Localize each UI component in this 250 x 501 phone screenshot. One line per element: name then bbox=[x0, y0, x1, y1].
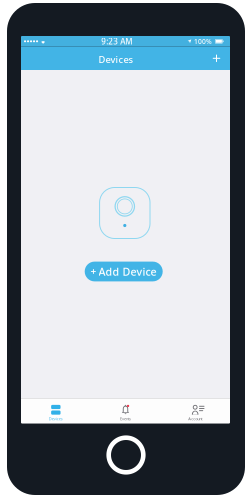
staticText: Add Device bbox=[98, 264, 156, 279]
staticText: Devices bbox=[98, 53, 133, 65]
button[interactable]: Account bbox=[160, 398, 230, 423]
staticText: Events bbox=[120, 416, 131, 421]
button[interactable]: Add Device bbox=[85, 262, 163, 281]
button[interactable]: Add Device bbox=[208, 50, 225, 67]
staticText: 9:23 AM bbox=[101, 36, 132, 47]
staticText: Account bbox=[188, 416, 202, 421]
staticText: 100% bbox=[194, 37, 212, 46]
button[interactable]: Devices bbox=[21, 398, 91, 423]
staticText: Devices bbox=[49, 416, 63, 421]
button[interactable]: Events bbox=[91, 398, 160, 423]
